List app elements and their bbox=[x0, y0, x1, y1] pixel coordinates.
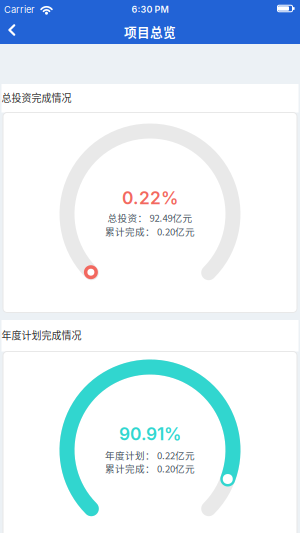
staticText: 90.91% bbox=[119, 423, 181, 444]
button[interactable]: Back bbox=[0, 0, 30, 44]
staticText: 总投资完成情况 bbox=[1, 90, 71, 105]
staticText: 6:30 PM bbox=[131, 4, 168, 15]
staticText: 总投资： 92.49亿元 bbox=[107, 211, 192, 224]
staticText: 年度计划完成情况 bbox=[1, 328, 81, 342]
staticText: Carrier bbox=[4, 4, 35, 15]
staticText: 年度计划： 0.22亿元 bbox=[105, 448, 195, 462]
staticText: 项目总览 bbox=[124, 22, 176, 41]
staticText: 累计完成： 0.20亿元 bbox=[105, 461, 195, 475]
staticText: 0.22% bbox=[122, 187, 178, 208]
staticText: 累计完成： 0.20亿元 bbox=[105, 224, 195, 238]
